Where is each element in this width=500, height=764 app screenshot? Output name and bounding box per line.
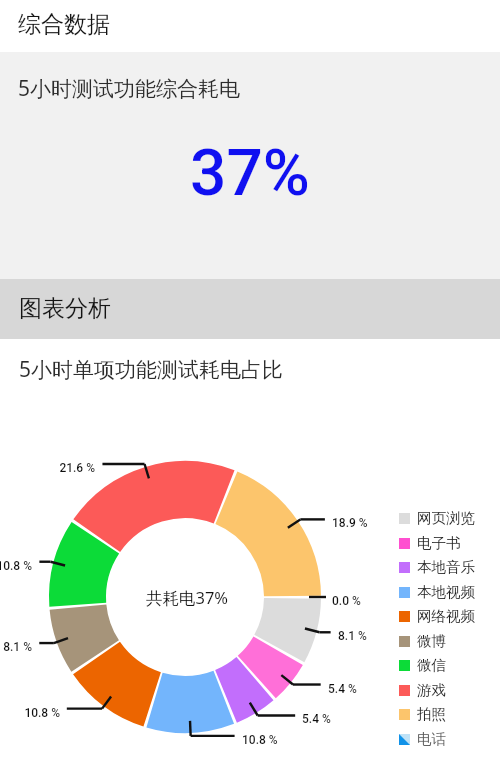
staticText: 8.1 % <box>0 640 32 656</box>
staticText: 本地音乐 <box>417 558 475 576</box>
staticText: 网络视频 <box>417 607 475 625</box>
button[interactable]: 本地音乐 <box>399 561 468 581</box>
staticText: 微博 <box>417 632 446 650</box>
staticText: 5.4 % <box>302 712 362 728</box>
staticText: 电话 <box>417 730 446 748</box>
button[interactable]: 电子书 <box>399 537 454 557</box>
staticText: 21.6 % <box>35 461 95 477</box>
staticText: 10.8 % <box>0 706 60 722</box>
staticText: 5小时单项功能测试耗电占比 <box>19 355 284 384</box>
button[interactable]: 网络视频 <box>399 610 468 630</box>
staticText: 本地视频 <box>417 583 475 601</box>
staticText: 综合数据 <box>18 10 110 39</box>
staticText: 共耗电37% <box>127 586 247 610</box>
button[interactable]: 拍照 <box>399 708 439 728</box>
staticText: 图表分析 <box>19 294 111 323</box>
staticText: 0.0 % <box>332 594 392 610</box>
button[interactable]: 电话 <box>399 733 439 753</box>
staticText: 微信 <box>417 656 446 674</box>
button[interactable]: 本地视频 <box>399 586 468 606</box>
button[interactable]: 游戏 <box>399 684 439 704</box>
button[interactable]: 微信 <box>399 659 439 679</box>
staticText: 5.4 % <box>328 682 388 698</box>
staticText: 5小时测试功能综合耗电 <box>18 74 241 103</box>
button[interactable]: 微博 <box>399 635 439 655</box>
button[interactable]: 综合数据 <box>0 0 500 52</box>
staticText: 游戏 <box>417 681 446 699</box>
staticText: 10.8 % <box>0 559 32 575</box>
staticText: 37% <box>190 136 310 211</box>
staticText: 网页浏览 <box>417 509 475 527</box>
staticText: 18.9 % <box>332 516 392 532</box>
staticText: 拍照 <box>417 705 446 723</box>
button[interactable]: 图表分析 <box>0 279 500 339</box>
button[interactable]: 网页浏览 <box>399 512 468 532</box>
staticText: 电子书 <box>417 534 461 552</box>
staticText: 8.1 % <box>338 629 398 645</box>
staticText: 10.8 % <box>242 733 302 749</box>
